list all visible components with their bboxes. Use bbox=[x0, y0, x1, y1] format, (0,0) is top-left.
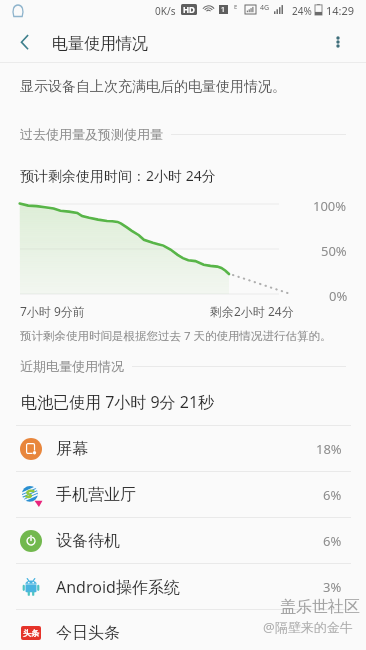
button[interactable]: 屏幕 bbox=[0, 426, 366, 471]
staticText: E bbox=[234, 3, 238, 11]
staticText: 4G bbox=[260, 3, 270, 13]
staticText: 14:29 bbox=[326, 3, 355, 18]
staticText: 7小时 9分前 bbox=[20, 303, 85, 319]
staticText: 手机营业厅 bbox=[56, 485, 136, 505]
staticText: 预计剩余使用时间是根据您过去 7 天的使用情况进行估算的。 bbox=[20, 328, 332, 344]
button[interactable]: 手机营业厅 bbox=[0, 472, 366, 517]
staticText: 过去使用量及预测使用量 bbox=[20, 126, 163, 142]
button[interactable]: More options bbox=[318, 22, 358, 62]
button[interactable]: 设备待机 bbox=[0, 518, 366, 563]
staticText: Android操作系统 bbox=[56, 576, 180, 598]
staticText: 0% bbox=[329, 287, 348, 305]
staticText: 100% bbox=[313, 197, 347, 215]
staticText: 今日头条 bbox=[56, 623, 120, 643]
staticText: 24% bbox=[292, 4, 312, 18]
staticText: 头条 bbox=[23, 628, 39, 638]
staticText: 50% bbox=[321, 242, 347, 260]
staticText: 6% bbox=[323, 532, 342, 550]
button[interactable]: 头条 bbox=[0, 610, 366, 650]
staticText: 18% bbox=[316, 440, 342, 458]
staticText: 预计剩余使用时间：2小时 24分 bbox=[20, 166, 216, 185]
staticText: 显示设备自上次充满电后的电量使用情况。 bbox=[20, 78, 286, 96]
staticText: 近期电量使用情况 bbox=[20, 358, 124, 374]
staticText: 屏幕 bbox=[56, 439, 88, 459]
staticText: 1 bbox=[221, 5, 226, 14]
button[interactable]: Android操作系统 bbox=[0, 564, 366, 609]
staticText: @隔壁来的金牛 bbox=[263, 618, 353, 636]
staticText: 设备待机 bbox=[56, 531, 120, 551]
staticText: 6% bbox=[323, 486, 342, 504]
button[interactable]: Back bbox=[4, 22, 44, 62]
staticText: 剩余2小时 24分 bbox=[210, 303, 294, 319]
staticText: 电量使用情况 bbox=[52, 34, 148, 54]
staticText: 电池已使用 7小时 9分 21秒 bbox=[21, 391, 215, 413]
staticText: 盖乐世社区 bbox=[280, 597, 360, 617]
staticText: 0K/s bbox=[155, 4, 176, 18]
staticText: 3% bbox=[323, 578, 342, 596]
staticText: HD bbox=[183, 4, 195, 15]
